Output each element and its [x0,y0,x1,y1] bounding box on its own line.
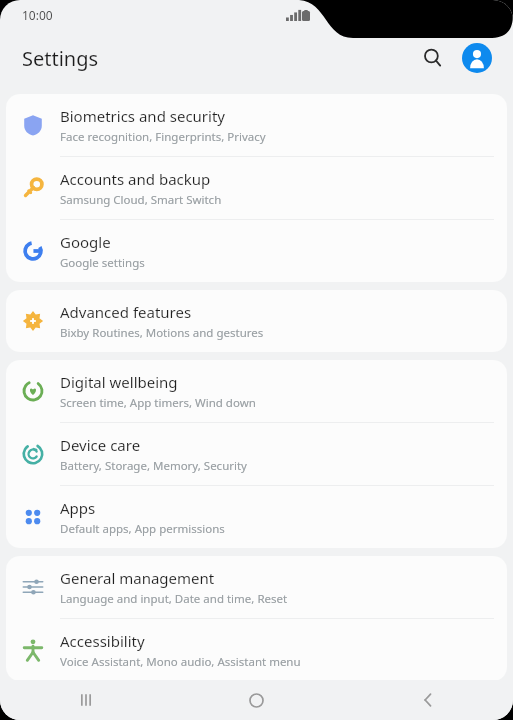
staticText: 10:00 [22,7,53,23]
staticText: Google settings [60,255,145,271]
button[interactable]: Accessibility [6,619,507,681]
button[interactable]: Biometrics and security [6,94,507,156]
button[interactable]: Samsung account [457,38,497,78]
staticText: Battery, Storage, Memory, Security [60,458,247,474]
staticText: Biometrics and security [60,106,226,126]
button[interactable]: General management [6,556,507,618]
staticText: Screen time, App timers, Wind down [60,395,256,411]
staticText: Accessibility [60,631,145,651]
staticText: Digital wellbeing [60,372,178,392]
button[interactable]: Device care [6,423,507,485]
staticText: Bixby Routines, Motions and gestures [60,325,264,341]
staticText: Samsung Cloud, Smart Switch [60,192,222,208]
button[interactable]: Recents [0,680,171,720]
staticText: Advanced features [60,302,192,322]
button[interactable]: Home [171,680,342,720]
staticText: Voice Assistant, Mono audio, Assistant m… [60,654,301,670]
staticText: Device care [60,435,141,455]
staticText: Accounts and backup [60,169,211,189]
button[interactable]: Apps [6,486,507,548]
staticText: Face recognition, Fingerprints, Privacy [60,129,266,145]
staticText: Google [60,232,111,252]
button[interactable]: Search [413,38,453,78]
button[interactable]: Digital wellbeing [6,360,507,422]
staticText: Default apps, App permissions [60,521,225,537]
button[interactable]: Back [342,680,513,720]
staticText: Apps [60,498,96,518]
staticText: Language and input, Date and time, Reset [60,591,288,607]
button[interactable]: Accounts and backup [6,157,507,219]
staticText: General management [60,568,215,588]
staticText: Settings [22,45,99,72]
button[interactable]: Advanced features [6,290,507,352]
button[interactable]: Google [6,220,507,282]
